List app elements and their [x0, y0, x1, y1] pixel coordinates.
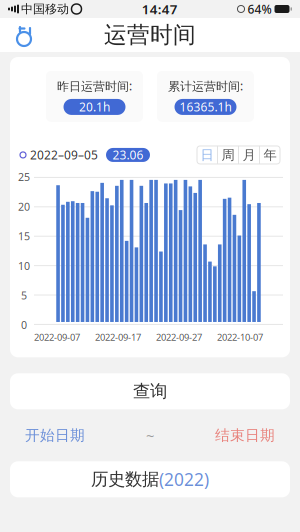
- staticText: 日: [200, 147, 213, 163]
- staticText: 累计运营时间:: [168, 78, 243, 94]
- button[interactable]: 开始日期: [20, 425, 90, 445]
- staticText: 年: [263, 147, 276, 163]
- staticText: 历史数据: [91, 469, 159, 490]
- staticText: 2022-09-27: [156, 331, 202, 343]
- staticText: 结束日期: [215, 426, 275, 444]
- staticText: 月: [242, 147, 255, 163]
- button[interactable]: 返回: [4, 20, 44, 50]
- staticText: 5: [21, 288, 27, 302]
- staticText: 昨日运营时间:: [57, 78, 132, 94]
- staticText: 中国移动: [21, 2, 69, 16]
- staticText: ~: [146, 426, 154, 445]
- staticText: 15: [18, 229, 30, 243]
- staticText: 周: [221, 147, 234, 163]
- staticText: 14:47: [142, 0, 178, 18]
- staticText: 2022-09-07: [34, 331, 80, 343]
- staticText: 2022-10-07: [217, 331, 263, 343]
- staticText: 2022–09–05: [30, 147, 98, 163]
- staticText: 10: [18, 259, 30, 273]
- button[interactable]: 年: [260, 146, 280, 164]
- staticText: 开始日期: [25, 426, 85, 444]
- staticText: 2022-09-17: [95, 331, 141, 343]
- staticText: 16365.1h: [179, 99, 231, 115]
- button[interactable]: 日: [197, 146, 217, 164]
- button[interactable]: 结束日期: [210, 425, 280, 445]
- staticText: 64%: [247, 1, 271, 17]
- staticText: 0: [21, 318, 27, 332]
- staticText: 25: [18, 170, 30, 184]
- staticText: 20.1h: [79, 99, 110, 115]
- staticText: 20: [18, 199, 30, 214]
- staticText: 23.06: [112, 147, 143, 163]
- button[interactable]: 历史数据: [10, 461, 290, 497]
- button[interactable]: 月: [239, 146, 259, 164]
- staticText: (2022): [159, 468, 209, 491]
- staticText: 查询: [133, 381, 167, 402]
- staticText: 运营时间: [104, 21, 196, 49]
- button[interactable]: 查询: [10, 373, 290, 409]
- button[interactable]: 周: [218, 146, 238, 164]
